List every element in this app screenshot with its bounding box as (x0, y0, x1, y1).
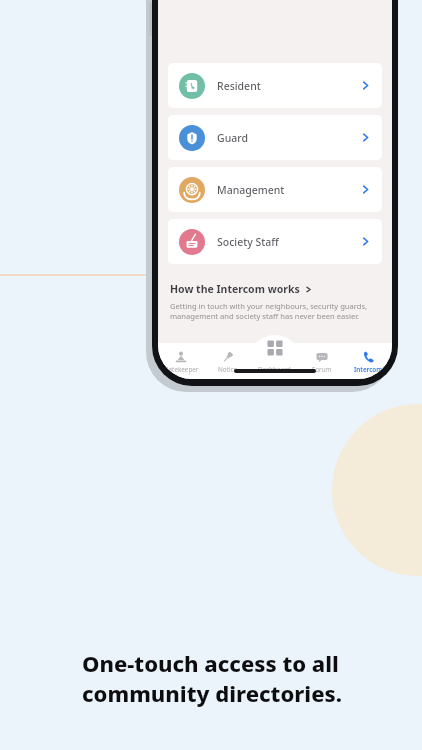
button[interactable]: How the Intercom works (158, 282, 392, 321)
button[interactable]: Intercom (345, 343, 392, 379)
button[interactable]: Society Staff (168, 219, 382, 264)
staticText: Forum (312, 365, 332, 374)
staticText: Management (217, 183, 285, 197)
button[interactable]: Dashboard (251, 343, 298, 379)
staticText: Dashboard (258, 365, 291, 374)
staticText: Gatekeeper (164, 365, 199, 374)
staticText: Society Staff (217, 235, 279, 249)
button[interactable]: Management (168, 167, 382, 212)
button[interactable]: Gatekeeper (158, 343, 204, 379)
button[interactable]: Forum (298, 343, 345, 379)
staticText: Notice (218, 365, 238, 374)
staticText: Getting in touch with your neighbours, s… (170, 301, 380, 321)
staticText: community directories. (82, 678, 342, 708)
staticText: How the Intercom works (170, 282, 300, 296)
staticText: Resident (217, 79, 261, 93)
button[interactable]: Guard (168, 115, 382, 160)
staticText: Intercom (354, 365, 383, 374)
staticText: Guard (217, 131, 248, 145)
button[interactable]: Resident (168, 63, 382, 108)
staticText: One-touch access to all (82, 648, 339, 678)
button[interactable]: Notice (204, 343, 251, 379)
